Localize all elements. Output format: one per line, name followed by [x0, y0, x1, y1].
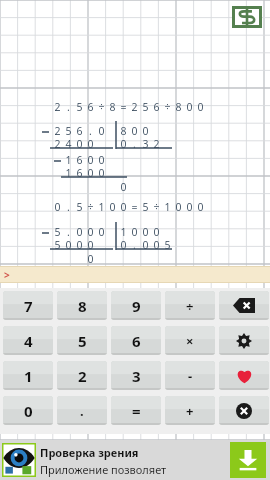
staticText: 0: [76, 225, 83, 239]
button[interactable]: Backspace: [219, 291, 269, 320]
button[interactable]: -: [165, 361, 215, 390]
staticText: 0: [142, 225, 149, 239]
staticText: 7: [24, 296, 33, 316]
staticText: -: [188, 367, 193, 385]
staticText: 4: [24, 331, 33, 351]
button[interactable]: .: [57, 396, 107, 425]
staticText: 0: [186, 200, 193, 214]
staticText: 0: [120, 180, 127, 194]
staticText: 8: [175, 100, 182, 114]
staticText: 0: [87, 225, 94, 239]
button[interactable]: Проверка зрения: [0, 440, 270, 480]
staticText: 5: [76, 100, 83, 114]
staticText: +: [186, 402, 194, 420]
staticText: 0: [87, 166, 94, 180]
staticText: 6: [153, 100, 160, 114]
staticText: .: [89, 124, 92, 138]
staticText: 0: [98, 124, 105, 138]
staticText: 2: [54, 100, 61, 114]
button[interactable]: Clear: [219, 396, 269, 425]
button[interactable]: +: [165, 396, 215, 425]
staticText: 0: [131, 225, 138, 239]
staticText: 0: [142, 124, 149, 138]
staticText: 0: [24, 401, 33, 421]
staticText: 1: [98, 200, 105, 214]
button[interactable]: 5: [57, 326, 107, 355]
button[interactable]: 2: [57, 361, 107, 390]
staticText: Проверка зрения: [40, 445, 139, 460]
button[interactable]: =: [111, 396, 161, 425]
staticText: .: [80, 402, 84, 420]
staticText: 5: [142, 100, 149, 114]
staticText: ÷: [87, 200, 94, 214]
staticText: 0: [142, 238, 149, 252]
staticText: 2: [131, 100, 138, 114]
staticText: 0: [76, 238, 83, 252]
staticText: 1: [24, 366, 33, 386]
staticText: 0: [76, 137, 83, 151]
staticText: .: [67, 200, 70, 214]
staticText: 1: [65, 153, 72, 167]
staticText: 0: [98, 166, 105, 180]
staticText: =: [132, 401, 141, 421]
staticText: 5: [142, 200, 149, 214]
staticText: >: [4, 268, 10, 282]
button[interactable]: ×: [165, 326, 215, 355]
staticText: 0: [120, 200, 127, 214]
staticText: 0: [120, 137, 127, 151]
staticText: 9: [132, 296, 141, 316]
staticText: 8: [109, 100, 116, 114]
staticText: 0: [153, 238, 160, 252]
staticText: 6: [76, 124, 83, 138]
staticText: 0: [120, 238, 127, 252]
button[interactable]: Settings: [219, 326, 269, 355]
staticText: 0: [175, 200, 182, 214]
staticText: 0: [87, 252, 94, 266]
staticText: 5: [54, 225, 61, 239]
staticText: 0: [98, 225, 105, 239]
staticText: .: [133, 137, 136, 151]
staticText: 3: [142, 137, 149, 151]
staticText: 5: [65, 124, 72, 138]
staticText: 1: [120, 225, 127, 239]
staticText: 5: [164, 238, 171, 252]
button[interactable]: ÷: [165, 291, 215, 320]
staticText: 2: [153, 137, 160, 151]
button[interactable]: >: [0, 266, 270, 283]
staticText: 6: [76, 153, 83, 167]
staticText: =: [131, 200, 138, 214]
button[interactable]: 4: [3, 326, 53, 355]
staticText: 0: [65, 238, 72, 252]
staticText: 2: [78, 366, 87, 386]
button[interactable]: Remove ads: [232, 6, 262, 28]
staticText: 3: [132, 366, 141, 386]
staticText: 6: [76, 166, 83, 180]
staticText: ÷: [164, 100, 171, 114]
button[interactable]: 6: [111, 326, 161, 355]
staticText: 0: [186, 100, 193, 114]
staticText: 0: [109, 200, 116, 214]
button[interactable]: 0: [3, 396, 53, 425]
staticText: 0: [98, 153, 105, 167]
button[interactable]: Install: [230, 442, 266, 478]
staticText: 1: [65, 166, 72, 180]
staticText: 5: [54, 238, 61, 252]
staticText: 0: [131, 124, 138, 138]
staticText: Приложение позволяет: [40, 462, 167, 477]
button[interactable]: Favorites: [219, 361, 269, 390]
staticText: 0: [197, 100, 204, 114]
button[interactable]: 8: [57, 291, 107, 320]
staticText: 0: [87, 153, 94, 167]
staticText: .: [67, 225, 70, 239]
staticText: 5: [76, 200, 83, 214]
button[interactable]: 1: [3, 361, 53, 390]
staticText: 2: [54, 124, 61, 138]
staticText: 6: [132, 331, 141, 351]
staticText: ÷: [186, 297, 194, 315]
staticText: 5: [78, 331, 87, 351]
staticText: 0: [87, 238, 94, 252]
button[interactable]: 9: [111, 291, 161, 320]
staticText: ÷: [153, 200, 160, 214]
button[interactable]: 3: [111, 361, 161, 390]
button[interactable]: 7: [3, 291, 53, 320]
